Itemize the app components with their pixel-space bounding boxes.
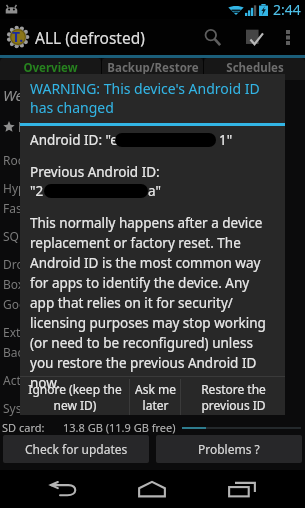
staticText: Backup/Restore — [107, 60, 199, 76]
button[interactable]: Problems ? — [156, 435, 302, 463]
button[interactable]: Ignore (keep the new ID) — [20, 379, 129, 415]
button[interactable]: Check for updates — [3, 435, 149, 463]
staticText: Root access — [3, 152, 69, 168]
button[interactable]: Overview — [0, 58, 101, 80]
staticText: Box — [3, 276, 25, 292]
staticText: Previous Android ID: — [30, 163, 160, 181]
staticText: ALL (defrosted) — [35, 27, 145, 48]
button[interactable]: Search — [192, 19, 232, 55]
button[interactable]: Back — [18, 470, 110, 508]
staticText: WARNING: This device's Android ID has ch… — [30, 79, 275, 117]
staticText: Backup folder — [3, 344, 82, 360]
staticText: Actions — [3, 372, 45, 388]
button[interactable]: Home — [106, 470, 198, 508]
staticText: Fast mode — [3, 200, 62, 216]
staticText: 13.8 GB (11.9 GB free) — [63, 420, 176, 435]
staticText: Problems ? — [198, 441, 260, 457]
staticText: SD card: — [2, 420, 45, 435]
staticText: Ignore (keep the new ID) — [28, 381, 122, 413]
button[interactable]: Schedules — [204, 58, 305, 80]
staticText: System — [3, 400, 44, 416]
button[interactable]: Restore the previous ID — [181, 379, 285, 415]
staticText: Hyper-shell — [3, 180, 68, 196]
staticText: This normally happens after a device rep… — [30, 214, 275, 392]
staticText: a" — [148, 182, 161, 200]
staticText: Ask me later — [135, 381, 176, 413]
staticText: External storage — [3, 324, 96, 340]
button[interactable]: Ask me later — [130, 379, 180, 415]
staticText: Pro version — [18, 117, 93, 136]
staticText: Android ID: "e — [30, 131, 118, 149]
staticText: Schedules — [226, 60, 284, 76]
staticText: T. — [12, 27, 24, 46]
staticText: 2:44 — [273, 0, 301, 19]
staticText: 1" — [219, 131, 233, 149]
staticText: Google Drive — [3, 296, 77, 312]
staticText: Restore the previous ID — [201, 381, 266, 413]
staticText: Dropbox — [3, 256, 52, 272]
button[interactable]: More options — [276, 19, 300, 55]
button[interactable]: Recent apps — [196, 470, 288, 508]
staticText: Welcome — [3, 85, 63, 105]
staticText: SQLite — [3, 228, 40, 244]
button[interactable]: Select all — [232, 19, 276, 55]
staticText: Check for updates — [25, 441, 128, 457]
staticText: "2 — [30, 182, 44, 200]
button[interactable]: Backup/Restore — [102, 58, 203, 80]
staticText: Overview — [23, 60, 78, 76]
